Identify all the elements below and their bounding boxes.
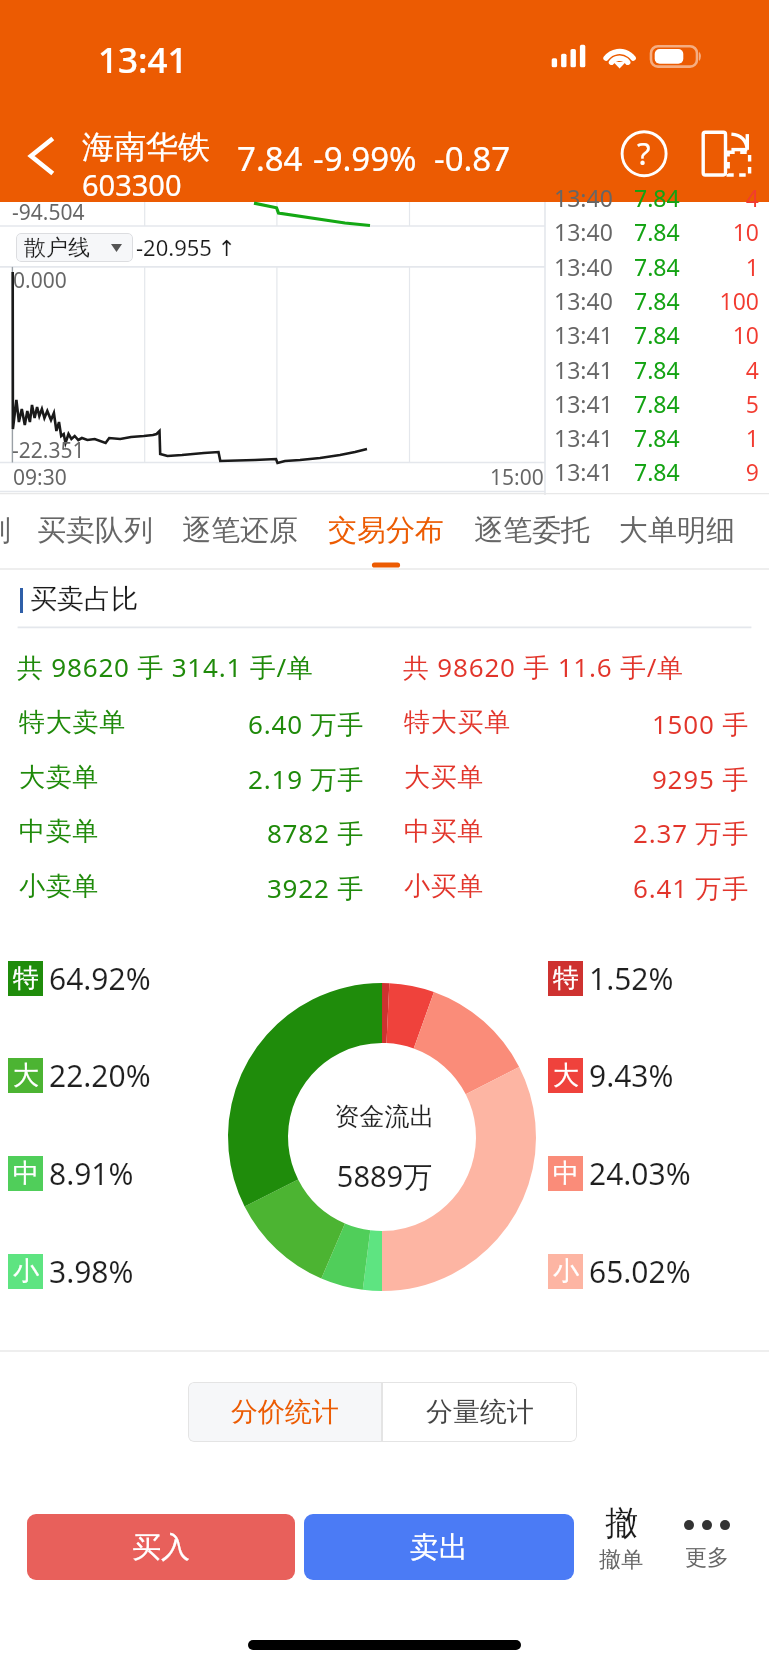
staticText: 7.84 — [634, 354, 680, 385]
staticText: 13:41 — [98, 36, 188, 84]
staticText: 7.84 — [237, 136, 303, 181]
staticText: 13:40 — [554, 182, 613, 213]
staticText: 撤单 — [599, 1546, 643, 1574]
button[interactable]: 买卖队列 — [36, 493, 154, 570]
button[interactable]: 逐笔还原 — [181, 493, 299, 570]
staticText: 09:30 — [13, 463, 67, 492]
staticText: 7.84 — [634, 285, 680, 316]
staticText: 买卖占比 — [30, 582, 138, 616]
staticText: 7.84 — [634, 388, 680, 419]
staticText: 1500 手 — [0, 706, 749, 742]
staticText: 交易分布 — [328, 512, 444, 549]
staticText: 小 — [13, 1255, 39, 1288]
staticText: 22.20% — [49, 1055, 151, 1090]
staticText: 中 — [13, 1157, 39, 1190]
staticText: 7.84 — [634, 456, 680, 487]
staticText: 9.43% — [589, 1055, 674, 1090]
staticText: 中买单 — [404, 815, 485, 848]
button[interactable]: 分量统计 — [382, 1382, 577, 1442]
staticText: 13:41 — [554, 354, 613, 385]
staticText: 6.41 万手 — [0, 870, 749, 906]
button[interactable]: 卖出 — [304, 1514, 574, 1580]
staticText: 撤 — [605, 1502, 638, 1544]
staticText: 1 — [745, 422, 759, 453]
button[interactable]: 撤 — [586, 1502, 656, 1594]
staticText: 603300 — [82, 165, 182, 204]
staticText: 更多 — [685, 1544, 729, 1572]
button[interactable]: Help — [618, 128, 670, 180]
staticText: 13:41 — [554, 319, 613, 350]
staticText: 资金流出 — [0, 1101, 769, 1132]
staticText: 2.37 万手 — [0, 815, 749, 851]
staticText: -94.504 — [12, 198, 85, 227]
staticText: 特 — [553, 962, 579, 995]
staticText: 10 — [732, 319, 759, 350]
button[interactable]: 分价统计 — [188, 1382, 382, 1442]
staticText: 1 — [745, 251, 759, 282]
staticText: 特大买单 — [404, 706, 512, 739]
staticText: 买卖队列 — [37, 512, 153, 549]
staticText: 小卖单 — [19, 870, 100, 903]
staticText: 7.84 — [634, 319, 680, 350]
staticText: 逐笔委托 — [474, 512, 590, 549]
staticText: 7.84 — [634, 251, 680, 282]
staticText: 大卖单 — [19, 761, 100, 794]
staticText: 7.84 — [634, 182, 680, 213]
staticText: 13:41 — [554, 388, 613, 419]
staticText: 小买单 — [404, 870, 485, 903]
staticText: 卖出 — [410, 1529, 468, 1566]
staticText: 7.84 — [634, 216, 680, 247]
staticText: 65.02% — [589, 1251, 691, 1286]
button[interactable]: 散户线 — [16, 233, 133, 262]
staticText: 9 — [745, 456, 759, 487]
staticText: -0.87 — [434, 136, 511, 181]
staticText: 海南华铁 — [82, 127, 210, 167]
staticText: 大买单 — [404, 761, 485, 794]
staticText: 分量统计 — [426, 1395, 534, 1429]
button[interactable]: Split screen — [698, 128, 754, 178]
staticText: 5889万 — [0, 1156, 769, 1196]
staticText: 分价统计 — [231, 1395, 339, 1429]
staticText: 3.98% — [49, 1251, 134, 1286]
staticText: 特大卖单 — [19, 706, 127, 739]
staticText: 9295 手 — [0, 761, 749, 797]
staticText: 13:40 — [554, 216, 613, 247]
staticText: ? — [637, 132, 651, 174]
button[interactable]: 更多 — [672, 1502, 742, 1594]
staticText: 13:41 — [554, 422, 613, 453]
button[interactable]: 列 — [0, 493, 11, 570]
button[interactable]: 交易分布 — [327, 493, 445, 570]
staticText: 8.91% — [49, 1153, 134, 1188]
staticText: 64.92% — [49, 958, 151, 993]
staticText: 逐笔还原 — [182, 512, 298, 549]
staticText: 共 98620 手 314.1 手/单 — [17, 649, 314, 685]
button[interactable]: 买入 — [27, 1514, 295, 1580]
staticText: 8782 手 — [0, 815, 364, 851]
staticText: 共 98620 手 11.6 手/单 — [403, 649, 685, 685]
staticText: 大单明细 — [619, 512, 735, 549]
staticText: 散户线 — [24, 234, 90, 262]
staticText: 24.03% — [589, 1153, 691, 1188]
staticText: 特 — [13, 962, 39, 995]
staticText: 1.52% — [589, 958, 674, 993]
staticText: 中卖单 — [19, 815, 100, 848]
staticText: 15:00 — [490, 463, 544, 492]
staticText: 3922 手 — [0, 870, 364, 906]
staticText: 10 — [732, 216, 759, 247]
staticText: 2.19 万手 — [0, 761, 364, 797]
staticText: -22.351 — [12, 436, 85, 465]
staticText: 7.84 — [634, 422, 680, 453]
button[interactable]: 大单明细 — [618, 493, 736, 570]
staticText: 100 — [719, 285, 759, 316]
button[interactable]: Back — [10, 126, 72, 186]
staticText: 4 — [745, 182, 759, 213]
staticText: 4 — [745, 354, 759, 385]
staticText: -20.955 ↑ — [136, 232, 237, 262]
staticText: 买入 — [132, 1529, 190, 1566]
button[interactable]: 逐笔委托 — [473, 493, 591, 570]
staticText: 13:40 — [554, 251, 613, 282]
staticText: 13:41 — [554, 456, 613, 487]
staticText: 大 — [13, 1059, 39, 1092]
staticText: 6.40 万手 — [0, 706, 364, 742]
staticText: 中 — [553, 1157, 579, 1190]
